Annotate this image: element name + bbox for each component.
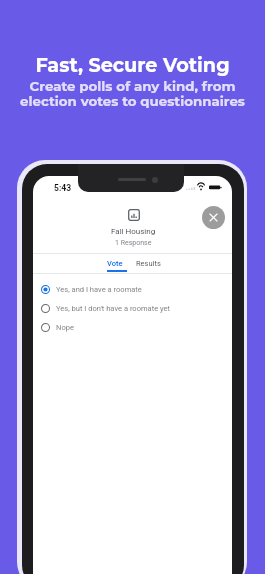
button[interactable]: Yes, but I don't have a roomate yet	[33, 299, 232, 318]
button[interactable]: Close	[202, 206, 225, 229]
staticText: Nope	[56, 323, 74, 332]
staticText: Fall Housing	[111, 227, 156, 236]
staticText: Yes, but I don't have a roomate yet	[56, 304, 171, 313]
button[interactable]: Vote	[102, 255, 128, 272]
staticText: Create polls of any kind, from election …	[20, 78, 245, 110]
staticText: Results	[136, 259, 161, 268]
button[interactable]: Yes, and I have a roomate	[33, 280, 232, 299]
staticText: 1 Response	[115, 239, 152, 247]
button[interactable]: Nope	[33, 318, 232, 337]
staticText: 5:43	[54, 183, 72, 193]
button[interactable]: Results	[131, 255, 166, 272]
staticText: Fast, Secure Voting	[35, 53, 230, 76]
staticText: Yes, and I have a roomate	[56, 285, 142, 294]
staticText: Vote	[107, 259, 123, 268]
